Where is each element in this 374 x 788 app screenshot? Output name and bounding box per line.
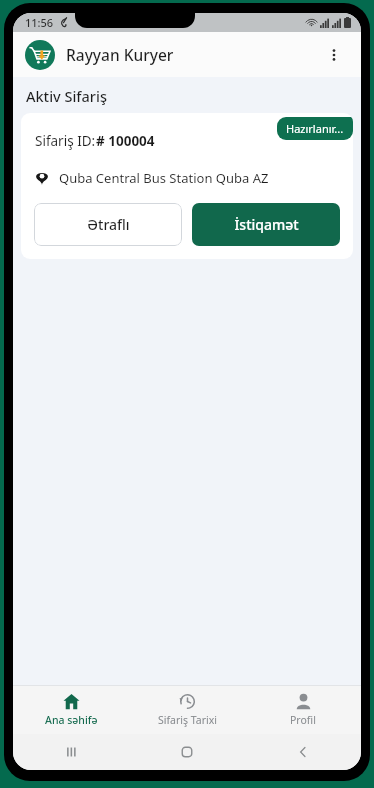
- button[interactable]: Home: [129, 734, 245, 770]
- staticText: Ətraflı: [87, 215, 130, 234]
- button[interactable]: Ətraflı: [34, 203, 182, 246]
- staticText: Aktiv Sifariş: [26, 86, 107, 106]
- staticText: Sifariş Tarixi: [158, 713, 217, 727]
- button[interactable]: Back: [245, 734, 361, 770]
- button[interactable]: Sifariş Tarixi: [129, 686, 245, 734]
- button[interactable]: Hazırlanır...: [277, 117, 353, 140]
- staticText: Sifariş ID:: [35, 132, 99, 150]
- staticText: Quba Central Bus Station Quba AZ: [59, 169, 269, 187]
- button[interactable]: Recent apps: [13, 734, 129, 770]
- button[interactable]: Ana səhifə: [13, 686, 129, 734]
- button[interactable]: Profil: [245, 686, 361, 734]
- staticText: Rayyan Kuryer: [66, 44, 174, 65]
- staticText: Ana səhifə: [45, 713, 98, 727]
- button[interactable]: More options: [319, 40, 349, 70]
- staticText: 11:56: [25, 15, 54, 30]
- staticText: Hazırlanır...: [286, 121, 344, 136]
- staticText: Profil: [290, 713, 316, 727]
- staticText: İstiqamət: [234, 215, 299, 234]
- button[interactable]: App logo: [25, 40, 55, 70]
- staticText: # 100004: [96, 132, 155, 150]
- button[interactable]: İstiqamət: [192, 203, 340, 246]
